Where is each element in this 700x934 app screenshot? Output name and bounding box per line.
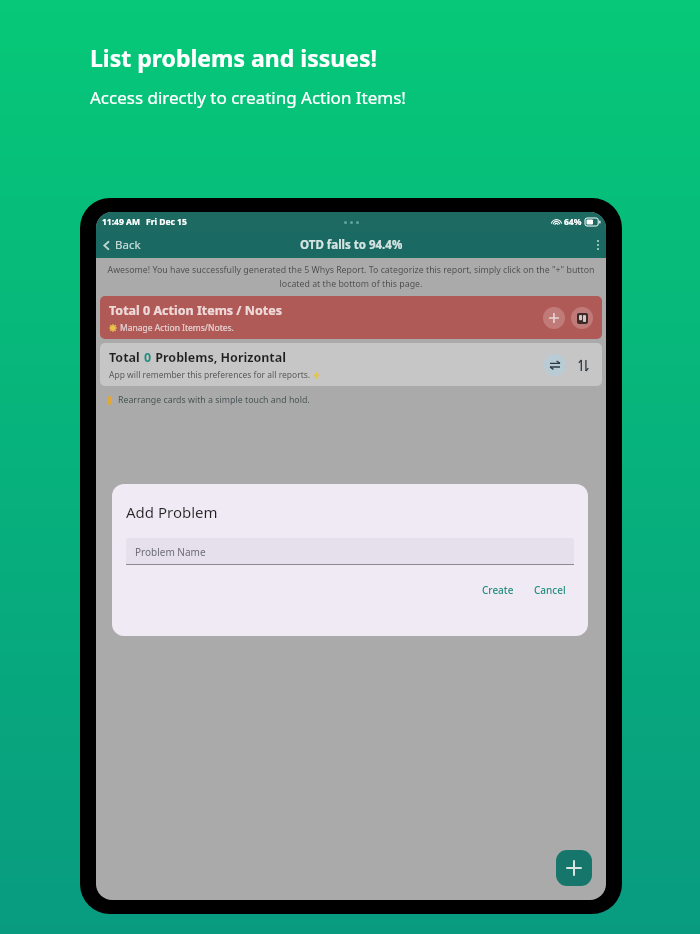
staticText: App will remember this preferences for a… — [109, 369, 313, 381]
staticText: Awesome! You have successfully generated… — [103, 264, 599, 290]
staticText: Create — [482, 583, 514, 597]
staticText: Access directly to creating Action Items… — [90, 86, 406, 109]
button[interactable]: Board view — [571, 307, 593, 329]
button[interactable]: Toggle orientation — [544, 354, 566, 376]
staticText: Manage Action Items/Notes. — [120, 322, 234, 334]
button[interactable]: Sort — [573, 355, 593, 375]
button[interactable]: Back — [96, 234, 149, 256]
staticText: 64% — [564, 216, 582, 228]
staticText: Fri Dec 15 — [146, 216, 187, 228]
staticText: OTD falls to 94.4% — [300, 237, 403, 253]
button[interactable]: Add — [556, 850, 592, 886]
staticText: Total — [109, 349, 144, 366]
button[interactable]: More options — [590, 236, 606, 254]
staticText: Problems, Horizontal — [152, 349, 286, 366]
staticText: Back — [115, 237, 141, 253]
staticText: Rearrange cards with a simple touch and … — [118, 394, 310, 406]
staticText: List problems and issues! — [90, 42, 377, 73]
button[interactable]: Total 0 Action Items / Notes — [100, 296, 602, 339]
staticText: 11:49 AM — [102, 216, 140, 228]
button[interactable]: Problem Name — [126, 538, 574, 565]
button[interactable]: Add action item — [543, 307, 565, 329]
staticText: Total 0 Action Items / Notes — [109, 302, 282, 319]
button[interactable]: Create — [474, 579, 522, 601]
button[interactable]: Total — [100, 343, 602, 386]
staticText: 0 — [144, 349, 152, 366]
staticText: Problem Name — [135, 545, 206, 559]
button[interactable]: Cancel — [526, 579, 574, 601]
staticText: Add Problem — [126, 502, 218, 522]
staticText: Cancel — [534, 583, 566, 597]
